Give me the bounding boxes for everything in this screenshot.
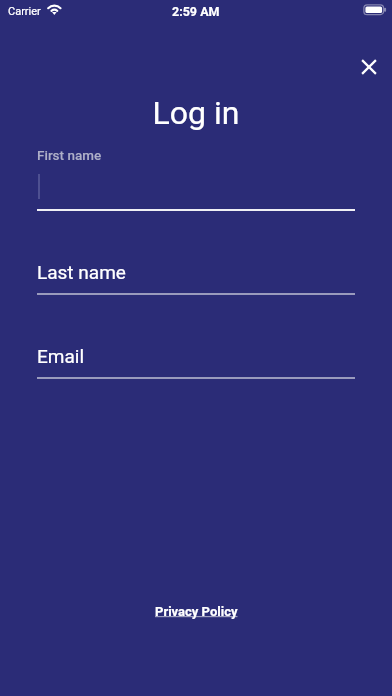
staticText: Last name xyxy=(37,261,126,283)
staticText: Carrier xyxy=(8,5,41,18)
other: Wi-Fi xyxy=(46,1,64,19)
staticText: 2:59 AM xyxy=(172,4,220,19)
button[interactable]: Privacy Policy xyxy=(149,600,244,623)
other: Battery full xyxy=(363,4,388,17)
staticText: Log in xyxy=(0,94,392,132)
button[interactable]: First name xyxy=(37,144,355,211)
staticText: Privacy Policy xyxy=(155,604,238,619)
button[interactable]: Last name xyxy=(37,253,355,295)
staticText: Email xyxy=(37,345,85,367)
button[interactable]: Email xyxy=(37,336,355,379)
button[interactable]: Close xyxy=(349,47,389,87)
staticText: First name xyxy=(37,147,102,163)
